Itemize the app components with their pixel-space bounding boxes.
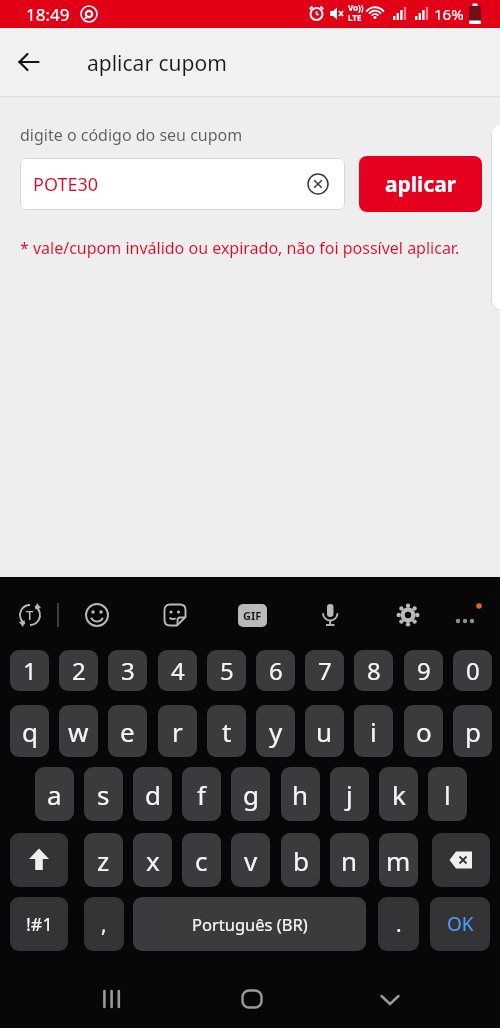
staticText: GIF (243, 608, 262, 623)
staticText: y (269, 714, 283, 749)
staticText: LTE (348, 12, 362, 23)
staticText: 5 (220, 654, 234, 687)
staticText: 7 (318, 654, 332, 687)
staticText: f (197, 777, 206, 812)
staticText: !#1 (26, 912, 53, 937)
button[interactable]: z (84, 833, 123, 887)
button[interactable]: d (133, 767, 172, 821)
staticText: x (146, 843, 160, 878)
staticText: a (47, 777, 62, 812)
button[interactable]: T (12, 597, 48, 633)
staticText: i (370, 714, 377, 749)
staticText: g (243, 777, 259, 812)
staticText: aplicar (385, 170, 457, 199)
button[interactable]: s (84, 767, 123, 821)
staticText: t (222, 714, 232, 749)
staticText: k (392, 777, 406, 812)
button[interactable] (10, 833, 68, 887)
staticText: Português (BR) (192, 913, 308, 935)
button[interactable]: v (231, 833, 270, 887)
staticText: digite o código do seu cupom (20, 124, 243, 146)
button[interactable] (432, 833, 490, 887)
button[interactable] (390, 597, 426, 633)
button[interactable] (447, 597, 487, 637)
staticText: p (465, 714, 481, 749)
button[interactable]: 5 (207, 650, 246, 691)
staticText: d (145, 777, 161, 812)
staticText: j (346, 777, 353, 812)
button[interactable] (8, 41, 50, 83)
button[interactable]: p (453, 705, 492, 757)
button[interactable] (79, 597, 115, 633)
button[interactable]: 9 (404, 650, 443, 691)
staticText: 18:49 (26, 3, 70, 26)
staticText: u (316, 714, 333, 749)
button[interactable]: GIF (238, 604, 267, 627)
button[interactable] (232, 979, 272, 1019)
button[interactable]: y (256, 705, 295, 757)
button[interactable]: i (354, 705, 393, 757)
staticText: h (292, 777, 309, 812)
staticText: v (244, 843, 258, 878)
button[interactable] (370, 979, 410, 1019)
staticText: c (195, 843, 208, 878)
staticText: l (444, 777, 451, 812)
button[interactable]: , (84, 897, 124, 951)
staticText: 9 (417, 654, 431, 687)
button[interactable]: OK (430, 897, 490, 951)
staticText: q (22, 714, 38, 749)
button[interactable]: !#1 (10, 897, 68, 951)
button[interactable]: 0 (453, 650, 492, 691)
staticText: POTE30 (33, 172, 99, 197)
staticText: Vo)) (348, 2, 364, 13)
button[interactable]: 7 (305, 650, 344, 691)
button[interactable]: w (59, 705, 98, 757)
button[interactable]: 4 (158, 650, 197, 691)
button[interactable] (312, 597, 348, 633)
button[interactable]: b (281, 833, 320, 887)
staticText: b (293, 843, 309, 878)
button[interactable] (92, 979, 132, 1019)
staticText: OK (447, 911, 474, 937)
button[interactable]: aplicar (359, 156, 482, 212)
button[interactable]: e (108, 705, 147, 757)
button[interactable]: Português (BR) (133, 897, 366, 951)
button[interactable]: c (182, 833, 221, 887)
button[interactable]: 3 (108, 650, 147, 691)
button[interactable]: q (10, 705, 49, 757)
staticText: r (172, 714, 183, 749)
staticText: aplicar cupom (87, 49, 227, 78)
button[interactable]: m (379, 833, 418, 887)
button[interactable]: u (305, 705, 344, 757)
button[interactable]: a (35, 767, 74, 821)
button[interactable]: t (207, 705, 246, 757)
button[interactable]: x (133, 833, 172, 887)
button[interactable]: o (404, 705, 443, 757)
staticText: 3 (121, 654, 135, 687)
staticText: , (101, 910, 107, 939)
staticText: s (97, 777, 110, 812)
button[interactable]: k (379, 767, 418, 821)
button[interactable]: g (231, 767, 270, 821)
button[interactable] (157, 597, 193, 633)
staticText: m (386, 843, 411, 878)
staticText: . (396, 910, 402, 939)
button[interactable]: 6 (256, 650, 295, 691)
button[interactable]: 1 (10, 650, 49, 691)
button[interactable]: h (281, 767, 320, 821)
staticText: e (120, 714, 135, 749)
staticText: 8 (367, 654, 381, 687)
staticText: w (68, 714, 89, 749)
button[interactable]: POTE30 (20, 158, 345, 210)
button[interactable]: 2 (59, 650, 98, 691)
button[interactable]: l (428, 767, 467, 821)
button[interactable]: f (182, 767, 221, 821)
button[interactable]: n (330, 833, 369, 887)
staticText: 0 (466, 654, 480, 687)
button[interactable]: . (378, 897, 419, 951)
button[interactable]: 8 (354, 650, 393, 691)
button[interactable]: r (158, 705, 197, 757)
staticText: 6 (269, 654, 283, 687)
button[interactable]: j (330, 767, 369, 821)
staticText: z (97, 843, 110, 878)
